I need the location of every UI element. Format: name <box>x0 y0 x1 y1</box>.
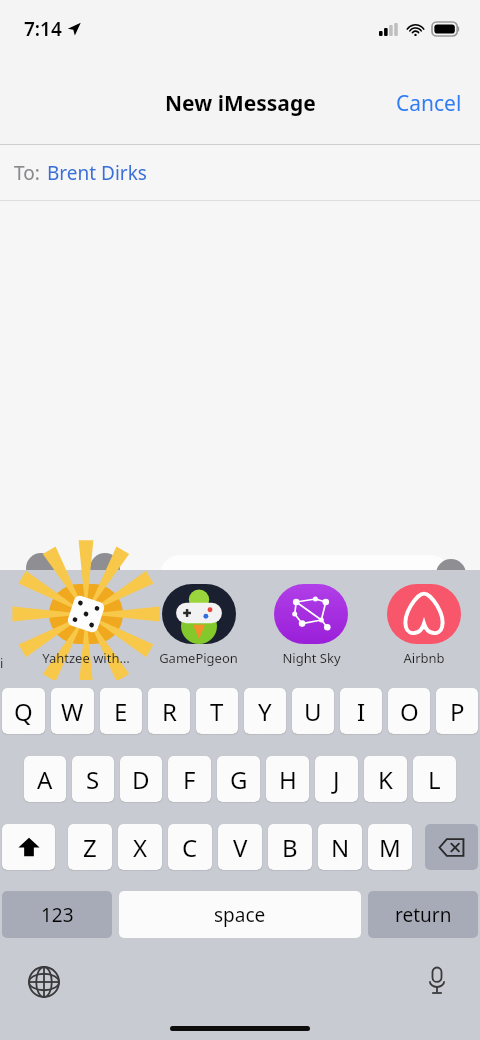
button[interactable]: G <box>217 756 260 802</box>
staticText: N <box>331 831 350 864</box>
staticText: Airbnb <box>403 649 445 667</box>
button[interactable]: Night Sky <box>274 570 348 667</box>
button[interactable]: C <box>168 824 212 870</box>
button[interactable]: U <box>292 688 334 734</box>
button[interactable]: D <box>120 756 162 802</box>
button[interactable]: Yahtzee with… <box>42 570 130 667</box>
staticText: G <box>230 763 248 796</box>
button[interactable]: V <box>218 824 262 870</box>
button[interactable]: R <box>148 688 190 734</box>
button[interactable]: E <box>100 688 142 734</box>
staticText: 7:14 <box>24 16 62 42</box>
staticText: O <box>400 695 419 728</box>
staticText: I <box>357 695 366 728</box>
button[interactable]: X <box>118 824 162 870</box>
staticText: M <box>379 831 401 864</box>
staticText: E <box>114 695 128 728</box>
button[interactable]: O <box>388 688 430 734</box>
staticText: Q <box>14 695 33 728</box>
button[interactable]: H <box>266 756 309 802</box>
staticText: 123 <box>41 902 74 928</box>
button[interactable]: Switch keyboard <box>22 960 66 1004</box>
button[interactable]: N <box>318 824 362 870</box>
staticText: i <box>0 654 4 672</box>
button[interactable]: Q <box>2 688 45 734</box>
staticText: X <box>133 831 148 864</box>
button[interactable]: 123 <box>2 891 112 938</box>
staticText: New iMessage <box>165 89 316 118</box>
staticText: Cancel <box>396 89 462 118</box>
staticText: B <box>282 831 298 864</box>
staticText: Y <box>258 695 272 728</box>
staticText: P <box>450 695 465 728</box>
staticText: GamePigeon <box>159 649 238 667</box>
staticText: J <box>333 763 340 796</box>
button[interactable]: M <box>368 824 412 870</box>
staticText: C <box>182 831 198 864</box>
button[interactable]: Y <box>244 688 286 734</box>
button[interactable]: K <box>364 756 407 802</box>
button[interactable]: Cancel <box>378 79 480 128</box>
button[interactable]: Delete <box>425 824 478 870</box>
button[interactable]: B <box>268 824 312 870</box>
button[interactable] <box>160 555 450 595</box>
button[interactable]: GamePigeon <box>159 570 238 667</box>
button[interactable]: Apps <box>90 553 120 583</box>
staticText: W <box>61 695 84 728</box>
staticText: R <box>162 695 177 728</box>
button[interactable]: Z <box>68 824 112 870</box>
staticText: K <box>378 763 393 796</box>
button[interactable]: A <box>24 756 66 802</box>
staticText: Z <box>83 831 97 864</box>
button[interactable]: Airbnb <box>387 570 461 667</box>
button[interactable]: To: <box>0 145 480 201</box>
button[interactable]: T <box>196 688 238 734</box>
staticText: Night Sky <box>282 649 341 667</box>
staticText: A <box>37 763 53 796</box>
button[interactable]: Send <box>436 559 466 589</box>
button[interactable]: return <box>368 891 478 938</box>
button[interactable]: F <box>168 756 211 802</box>
button[interactable]: I <box>340 688 382 734</box>
button[interactable]: Dictation <box>416 960 458 1002</box>
staticText: D <box>132 763 150 796</box>
button[interactable]: L <box>413 756 456 802</box>
button[interactable]: space <box>119 891 361 938</box>
staticText: Yahtzee with… <box>42 649 130 667</box>
button[interactable]: Shift <box>2 824 55 870</box>
staticText: To: <box>14 160 40 186</box>
staticText: H <box>279 763 297 796</box>
staticText: U <box>304 695 322 728</box>
button[interactable]: Camera <box>26 553 56 583</box>
button[interactable]: P <box>436 688 478 734</box>
staticText: V <box>233 831 248 864</box>
staticText: Brent Dirks <box>47 160 147 186</box>
button[interactable]: S <box>72 756 114 802</box>
staticText: F <box>183 763 196 796</box>
staticText: return <box>395 902 452 928</box>
staticText: T <box>210 695 224 728</box>
button[interactable]: J <box>315 756 358 802</box>
staticText: space <box>214 902 266 928</box>
staticText: S <box>86 763 100 796</box>
staticText: L <box>428 763 441 796</box>
button[interactable]: W <box>51 688 94 734</box>
